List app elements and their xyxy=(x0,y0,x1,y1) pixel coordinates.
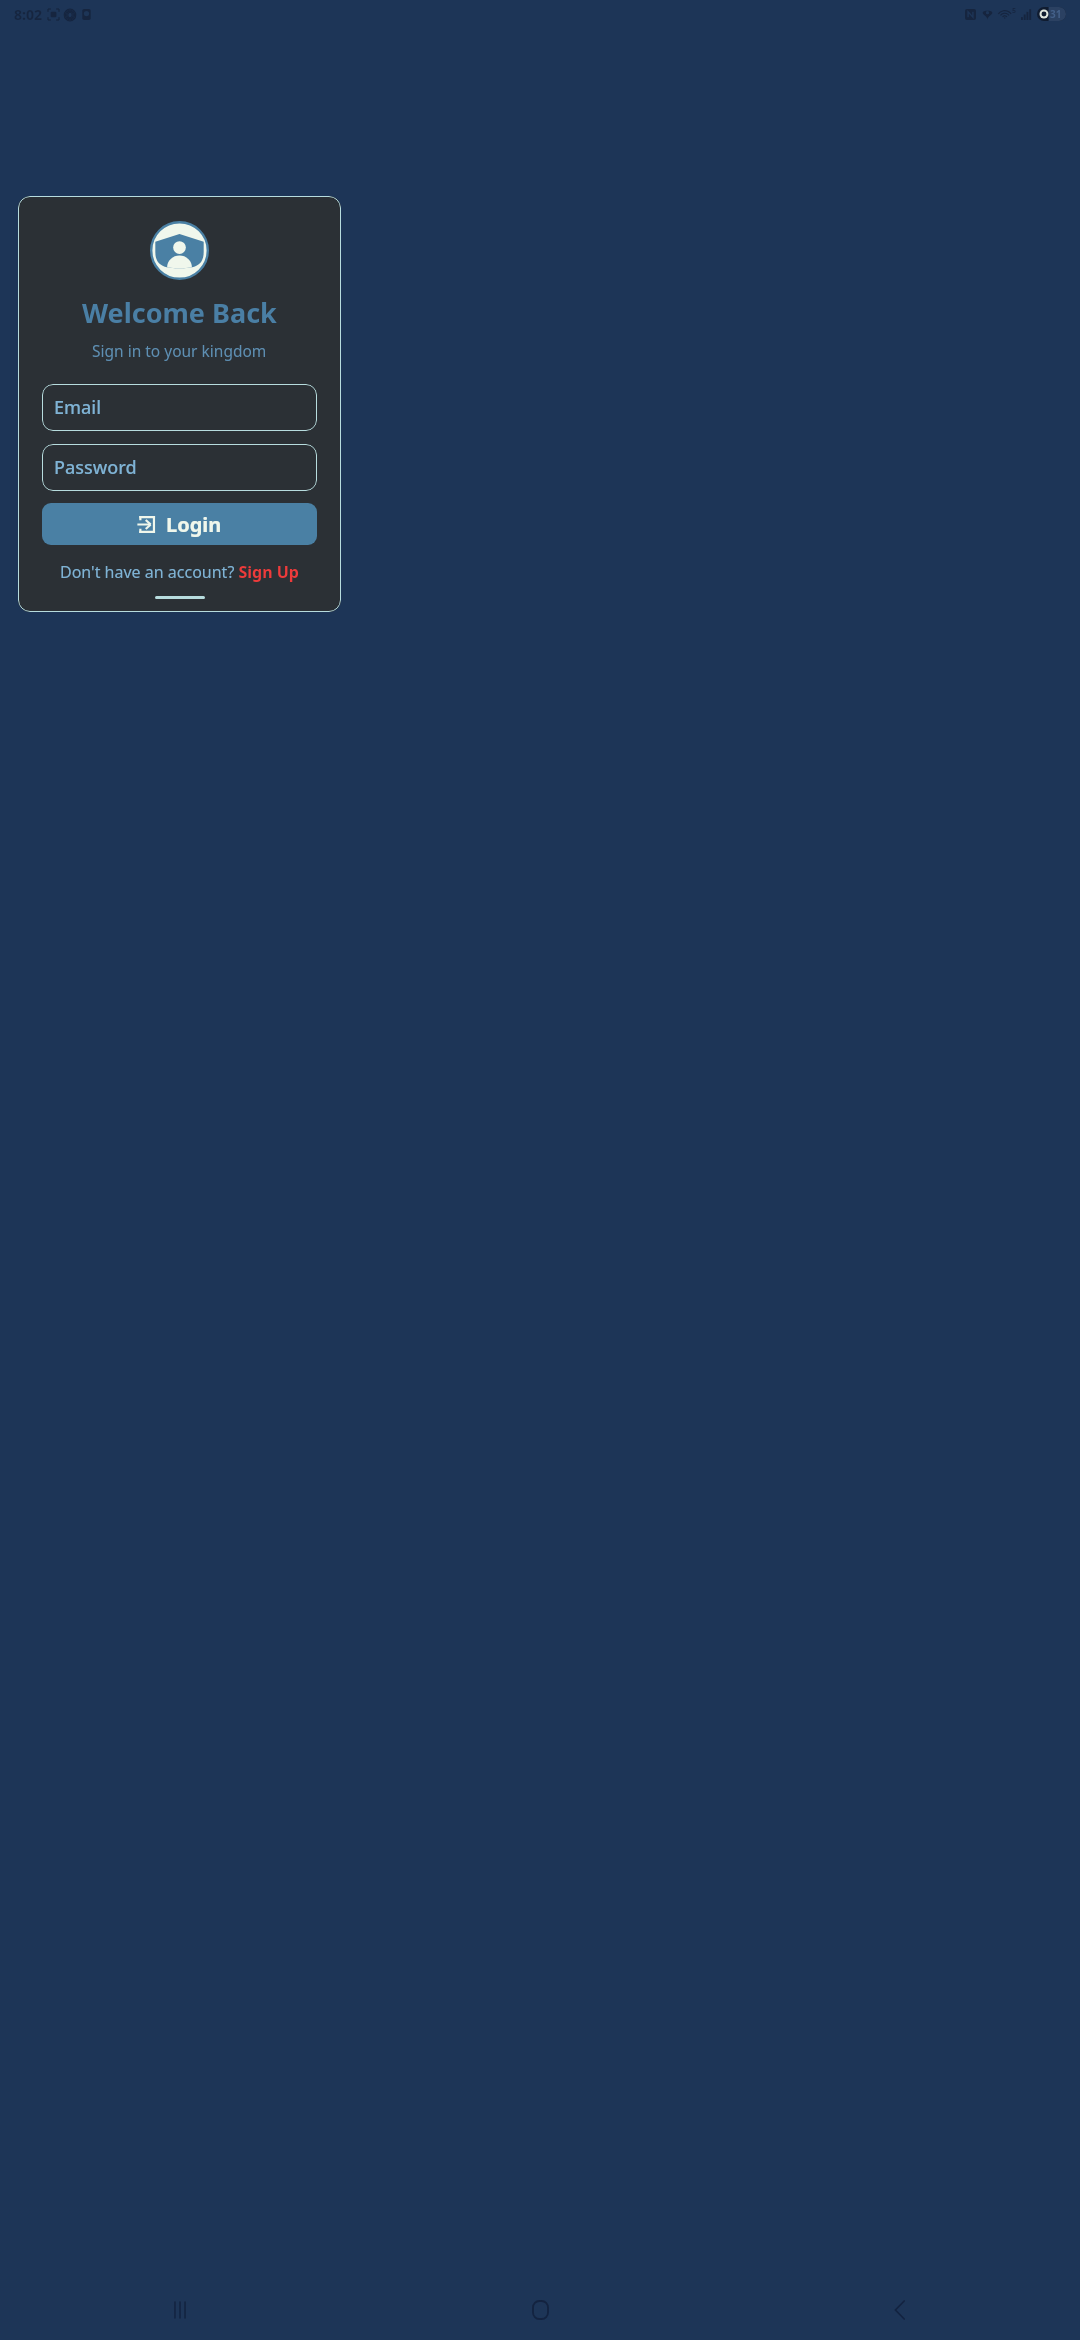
button[interactable]: Login xyxy=(42,503,317,545)
staticText: Login xyxy=(166,511,222,538)
button[interactable]: Email xyxy=(42,384,317,431)
staticText: Email xyxy=(54,395,102,420)
staticText: Welcome Back xyxy=(82,294,277,331)
staticText: 5 xyxy=(1012,6,1017,16)
button[interactable]: Home xyxy=(516,2286,564,2334)
button[interactable]: Recents xyxy=(156,2286,204,2334)
staticText: Password xyxy=(54,455,137,480)
staticText: 31 xyxy=(1050,7,1062,21)
button[interactable]: Don't have an account? Sign Up xyxy=(60,561,299,583)
staticText: Don't have an account? Sign Up xyxy=(60,561,299,583)
staticText: Sign in to your kingdom xyxy=(92,340,267,361)
staticText: 8:02 xyxy=(14,5,42,24)
button[interactable]: Password xyxy=(42,444,317,491)
